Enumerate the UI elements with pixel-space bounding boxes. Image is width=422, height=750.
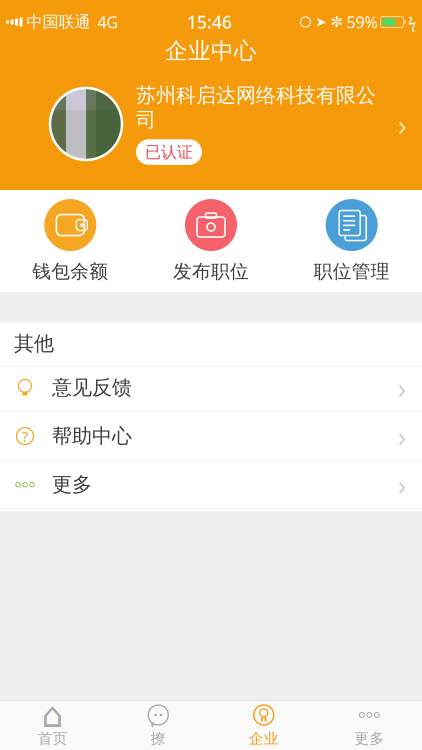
- staticText: ›: [398, 465, 406, 504]
- staticText: 钱包余额: [32, 260, 108, 283]
- staticText: 帮助中心: [52, 424, 132, 448]
- staticText: ϟ: [408, 12, 416, 32]
- staticText: 更多: [52, 472, 92, 497]
- staticText: 其他: [14, 331, 54, 356]
- staticText: 企业: [249, 729, 279, 747]
- staticText: 职位管理: [314, 260, 390, 283]
- staticText: 更多: [354, 729, 384, 747]
- staticText: 4G: [97, 11, 118, 33]
- button[interactable]: 企业: [211, 701, 316, 750]
- staticText: 59%: [346, 11, 377, 33]
- staticText: ➤: [315, 14, 326, 29]
- staticText: 苏州科启达网络科技有限公司: [136, 83, 376, 132]
- staticText: ✼: [330, 14, 342, 30]
- staticText: 已认证: [145, 142, 193, 162]
- button[interactable]: ⌂: [0, 701, 105, 750]
- staticText: 发布职位: [173, 260, 249, 283]
- staticText: ⌂: [42, 695, 64, 735]
- staticText: 中国联通: [26, 12, 90, 32]
- button[interactable]: 职位管理: [281, 199, 422, 283]
- button[interactable]: 钱包余额: [0, 199, 141, 283]
- button[interactable]: ?: [0, 414, 422, 463]
- staticText: ?: [22, 426, 28, 446]
- button[interactable]: 更多: [316, 701, 422, 750]
- button[interactable]: 发布职位: [141, 199, 281, 283]
- button[interactable]: 意见反馈: [0, 365, 422, 414]
- staticText: ›: [398, 417, 406, 456]
- button[interactable]: 苏州科启达网络科技有限公司: [0, 70, 422, 178]
- staticText: ›: [398, 103, 406, 145]
- button[interactable]: 更多: [0, 463, 422, 511]
- staticText: 企业中心: [165, 37, 257, 65]
- button[interactable]: 撩: [105, 701, 211, 750]
- staticText: ›: [398, 368, 406, 407]
- staticText: 首页: [38, 729, 68, 747]
- staticText: 意见反馈: [52, 375, 132, 400]
- staticText: 15:46: [187, 10, 232, 33]
- staticText: 撩: [151, 729, 166, 747]
